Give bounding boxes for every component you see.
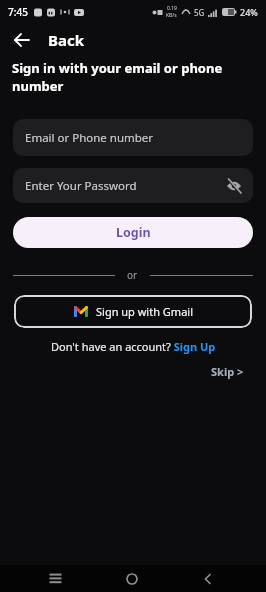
staticText: Back <box>48 30 85 50</box>
staticText: Sign in with your email or phone number <box>12 59 223 95</box>
button[interactable]: Don't have an account? Sign Up <box>51 339 216 354</box>
button[interactable] <box>126 573 138 585</box>
staticText: or <box>127 268 138 282</box>
staticText: Login <box>116 224 151 241</box>
button[interactable]: Email or Phone number <box>13 119 253 156</box>
staticText: 7:45 <box>8 5 28 19</box>
button[interactable]: Back <box>14 30 266 50</box>
staticText: Email or Phone number <box>25 130 154 146</box>
button[interactable]: Skip > <box>211 364 244 379</box>
staticText: 24% <box>240 6 258 18</box>
staticText: Enter Your Password <box>25 178 137 194</box>
button[interactable] <box>49 572 62 585</box>
staticText: 0.19 <box>167 5 177 12</box>
button[interactable] <box>202 573 214 585</box>
staticText: KB/s <box>166 12 177 19</box>
button[interactable]: Enter Your Password <box>13 168 253 203</box>
staticText: 5G <box>194 7 205 18</box>
button[interactable]: Login <box>13 217 253 248</box>
button[interactable]: Sign up with Gmail <box>14 295 252 328</box>
staticText: Sign up with Gmail <box>96 304 193 319</box>
